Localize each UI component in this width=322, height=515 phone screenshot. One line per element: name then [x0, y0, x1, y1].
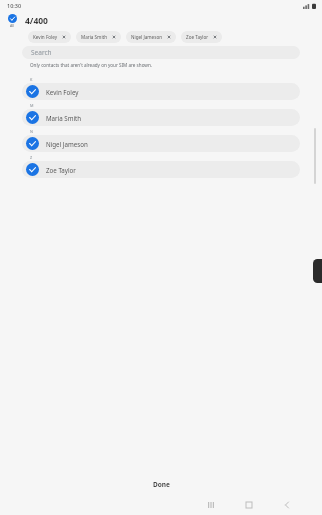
staticText: Maria Smith [46, 114, 82, 122]
staticText: Search [31, 48, 52, 57]
button[interactable]: Home [236, 495, 262, 515]
button[interactable]: Open edge panel [313, 259, 322, 283]
staticText: K [30, 77, 33, 82]
staticText: Nigel Jameson [46, 140, 88, 148]
staticText: All [10, 23, 15, 28]
staticText: Done [153, 480, 170, 489]
staticText: 4/400 [25, 15, 48, 27]
staticText: Kevin Foley [46, 88, 79, 96]
button[interactable]: Search [22, 46, 300, 59]
staticText: N [30, 129, 33, 134]
button[interactable]: Kevin Foley [28, 31, 71, 43]
button[interactable]: Zoe Taylor [22, 161, 300, 178]
staticText: Maria Smith [81, 34, 108, 40]
button[interactable]: Recents [198, 495, 224, 515]
button[interactable]: Select all [6, 14, 19, 28]
button[interactable]: Kevin Foley [22, 83, 300, 100]
button[interactable]: Maria Smith [22, 109, 300, 126]
staticText: Z [30, 155, 33, 160]
button[interactable]: Maria Smith [76, 31, 121, 43]
button[interactable]: Nigel Jameson [22, 135, 300, 152]
staticText: Nigel Jameson [131, 34, 163, 40]
staticText: Only contacts that aren't already on you… [30, 62, 153, 68]
staticText: M [30, 103, 34, 108]
button[interactable]: Zoe Taylor [181, 31, 222, 43]
button[interactable]: Nigel Jameson [126, 31, 176, 43]
button[interactable]: Done [143, 477, 180, 492]
staticText: Kevin Foley [33, 34, 58, 40]
staticText: 10:30 [7, 2, 22, 9]
staticText: Zoe Taylor [46, 166, 76, 174]
staticText: Zoe Taylor [186, 34, 209, 40]
button[interactable]: Back [274, 495, 300, 515]
